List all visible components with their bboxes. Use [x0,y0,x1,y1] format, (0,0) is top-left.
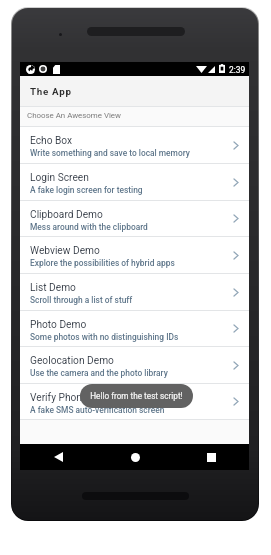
staticText: 2:39 [229,65,246,75]
staticText: List Demo [30,282,76,294]
staticText: Hello from the test script! [90,391,183,401]
button[interactable]: Back [20,444,97,470]
staticText: Verify Phone [30,392,88,404]
button[interactable]: Login Screen [20,164,249,201]
staticText: Choose An Awesome View [27,111,121,120]
staticText: Photo Demo [30,319,87,331]
staticText: Login Screen [30,172,89,184]
staticText: Some photos with no distinguishing IDs [30,332,179,342]
staticText: A fake login screen for testing [30,185,143,195]
staticText: Scroll through a list of stuff [30,295,133,305]
staticText: Echo Box [30,135,73,147]
button[interactable]: Photo Demo [20,311,249,347]
button[interactable]: Recent apps [173,444,249,470]
staticText: Mess around with the clipboard [30,222,148,232]
button[interactable]: List Demo [20,274,249,311]
staticText: Use the camera and the photo library [30,368,168,378]
button[interactable]: Webview Demo [20,237,249,274]
staticText: Write something and save to local memory [30,148,190,158]
button[interactable]: Echo Box [20,127,249,164]
button[interactable]: Home [97,444,173,470]
button[interactable]: Clipboard Demo [20,201,249,237]
button[interactable]: Verify Phone [20,384,249,420]
staticText: Webview Demo [30,245,100,257]
staticText: Geolocation Demo [30,355,114,367]
staticText: The App [30,86,72,97]
staticText: A fake SMS auto-verification screen [30,405,165,415]
button[interactable]: Geolocation Demo [20,347,249,384]
staticText: Clipboard Demo [30,209,103,221]
staticText: Explore the possibilities of hybrid apps [30,258,175,268]
